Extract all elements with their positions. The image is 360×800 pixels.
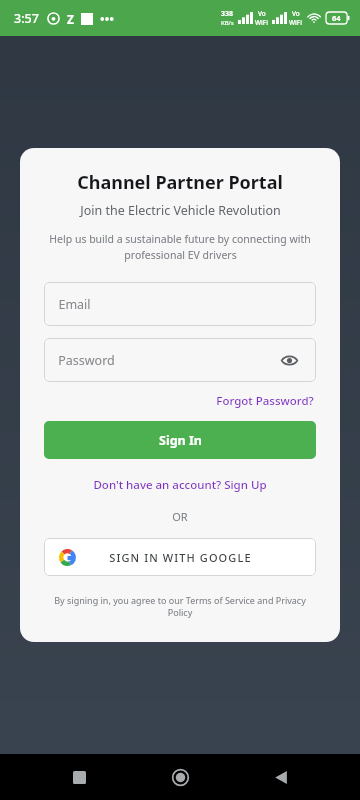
staticText: Channel Partner Portal (77, 170, 283, 195)
staticText: Forgot Password? (216, 393, 314, 409)
staticText: By signing in, you agree to our Terms of… (44, 594, 316, 618)
staticText: Vo (258, 9, 266, 18)
staticText: WiFi (289, 18, 303, 27)
staticText: Don't have an account? Sign Up (93, 477, 267, 493)
staticText: 338 (221, 9, 234, 19)
staticText: Help us build a sustainable future by co… (49, 232, 311, 246)
staticText: Sign In (159, 432, 202, 449)
staticText: 64 (332, 13, 341, 23)
button[interactable]: Email (44, 282, 316, 326)
staticText: professional EV drivers (124, 248, 237, 262)
button[interactable]: Show password (276, 347, 302, 373)
button[interactable]: Don't have an account? Sign Up (90, 475, 270, 495)
staticText: WiFi (255, 18, 269, 27)
staticText: Vo (292, 9, 300, 18)
button[interactable]: SIGN IN WITH GOOGLE (44, 538, 316, 576)
staticText: KB/s (221, 19, 234, 27)
staticText: Join the Electric Vehicle Revolution (80, 202, 281, 219)
button[interactable]: Recent apps (60, 758, 98, 796)
staticText: Email (58, 296, 91, 313)
staticText: Password (58, 352, 115, 369)
button[interactable]: Home (161, 758, 199, 796)
staticText: SIGN IN WITH GOOGLE (109, 550, 252, 565)
button[interactable]: Sign In (44, 421, 316, 459)
staticText: 3:57 (14, 10, 39, 27)
button[interactable]: Back (262, 758, 300, 796)
button[interactable]: Password (44, 338, 316, 382)
staticText: Z (67, 11, 74, 27)
staticText: OR (172, 509, 188, 524)
button[interactable]: Forgot Password? (214, 391, 316, 411)
